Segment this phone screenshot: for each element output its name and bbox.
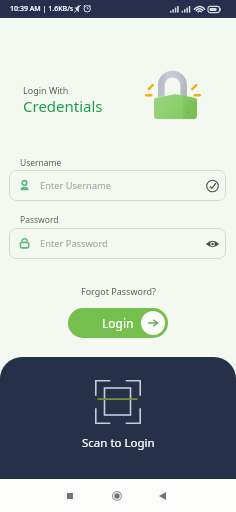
staticText: Login <box>102 315 134 331</box>
staticText: Password <box>20 214 59 226</box>
button[interactable]: Scan QR code <box>0 357 236 479</box>
staticText: Enter Password <box>40 237 108 250</box>
staticText: 10:39 AM | 1.6KB/s <box>10 4 74 14</box>
other: Scan QR code <box>95 380 141 424</box>
staticText: Login With <box>23 84 69 96</box>
staticText: Credentials <box>23 96 103 116</box>
staticText: Scan to Login <box>82 435 155 451</box>
staticText: Enter Username <box>40 179 112 192</box>
button[interactable]: Enter Password <box>9 228 226 259</box>
button[interactable]: Back <box>148 482 176 510</box>
button[interactable]: Login <box>68 308 168 338</box>
staticText: Forgot Password? <box>81 285 156 297</box>
staticText: Username <box>20 157 62 169</box>
button[interactable]: Recents <box>56 482 84 510</box>
button[interactable]: Forgot Password? <box>79 283 158 299</box>
button[interactable]: Home <box>103 482 131 510</box>
button[interactable]: Enter Username <box>9 170 226 201</box>
